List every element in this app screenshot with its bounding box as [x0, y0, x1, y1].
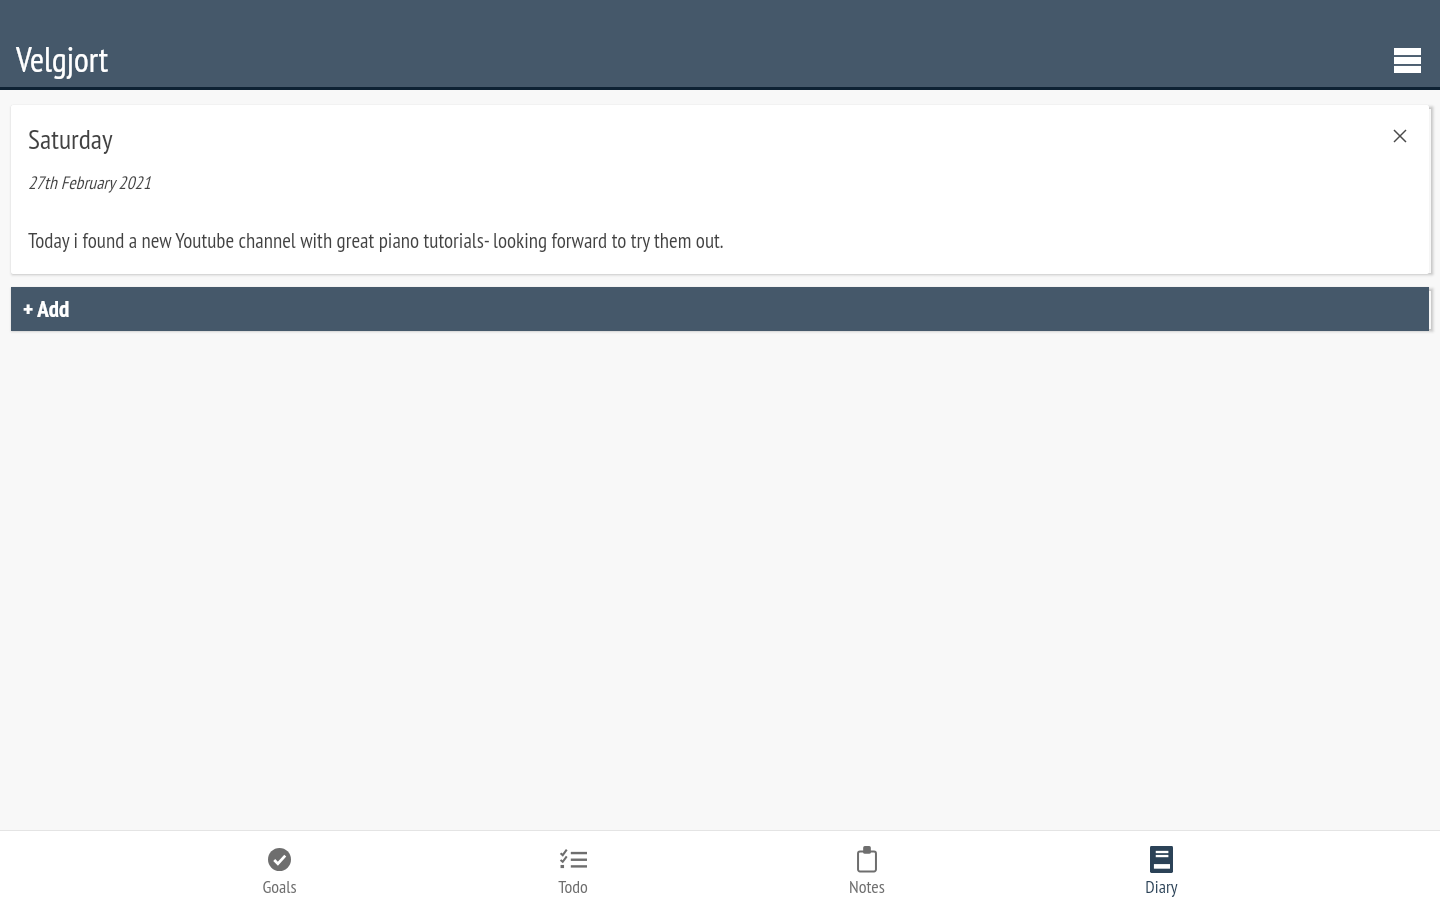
button[interactable]: Todo	[426, 831, 720, 900]
staticText: Velgjort	[16, 37, 109, 81]
staticText: Notes	[849, 875, 885, 898]
button[interactable]: Goals	[132, 831, 426, 900]
button[interactable]: Close entry	[1382, 118, 1418, 154]
staticText: Goals	[262, 875, 297, 898]
staticText: Todo	[558, 875, 588, 898]
button[interactable]: Notes	[720, 831, 1014, 900]
staticText: 27th February 2021	[28, 171, 151, 194]
staticText: Today i found a new Youtube channel with…	[28, 227, 724, 254]
button[interactable]: + Add	[11, 287, 1429, 331]
staticText: + Add	[23, 294, 70, 324]
button[interactable]: Diary	[1014, 831, 1308, 900]
button[interactable]: Open menu	[1383, 36, 1431, 84]
staticText: Diary	[1145, 875, 1178, 898]
staticText: Saturday	[28, 120, 113, 156]
